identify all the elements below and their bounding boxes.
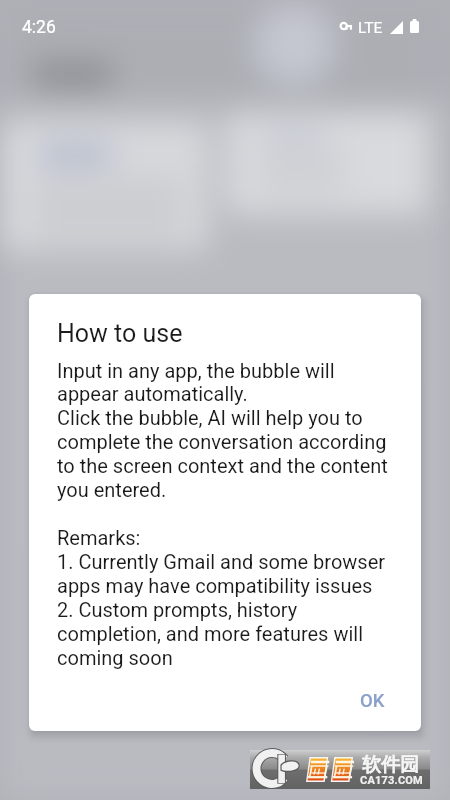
staticText: LTE — [358, 19, 383, 37]
staticText: OK — [360, 690, 385, 712]
staticText: How to use — [57, 319, 183, 348]
staticText: 软件园 — [362, 753, 419, 777]
button[interactable]: OK — [336, 682, 421, 720]
staticText: 4:26 — [22, 17, 56, 38]
staticText: Input in any app, the bubble will appear… — [57, 359, 403, 670]
staticText: CA173.COM — [360, 774, 423, 787]
